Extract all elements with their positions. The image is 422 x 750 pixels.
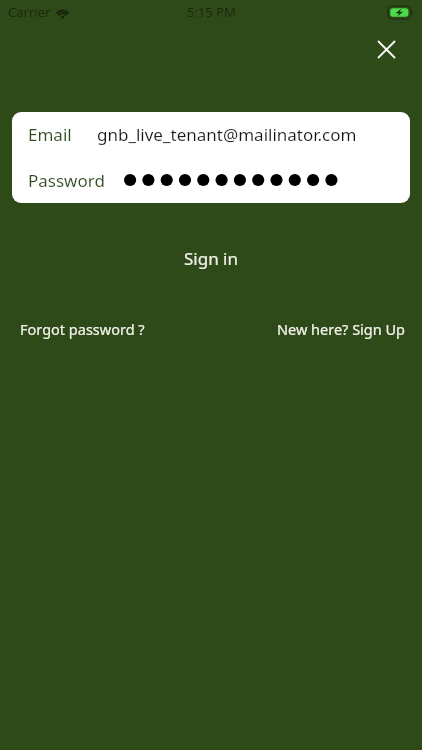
button[interactable]: Email [12,112,410,157]
staticText: Carrier [8,3,51,21]
staticText: Forgot password ? [20,319,145,339]
staticText: gnb_live_tenant@mailinator.com [97,123,357,146]
button[interactable]: New here? Sign Up [267,313,422,345]
staticText: Password [28,169,105,192]
button[interactable]: Password [12,157,410,203]
staticText: Sign in [184,247,238,270]
staticText: New here? Sign Up [277,319,406,339]
staticText: 5:15 PM [187,3,236,21]
staticText: Email [28,123,72,146]
button[interactable]: Sign in [156,240,266,277]
button[interactable]: Close [369,32,403,66]
button[interactable]: Forgot password ? [0,313,155,345]
